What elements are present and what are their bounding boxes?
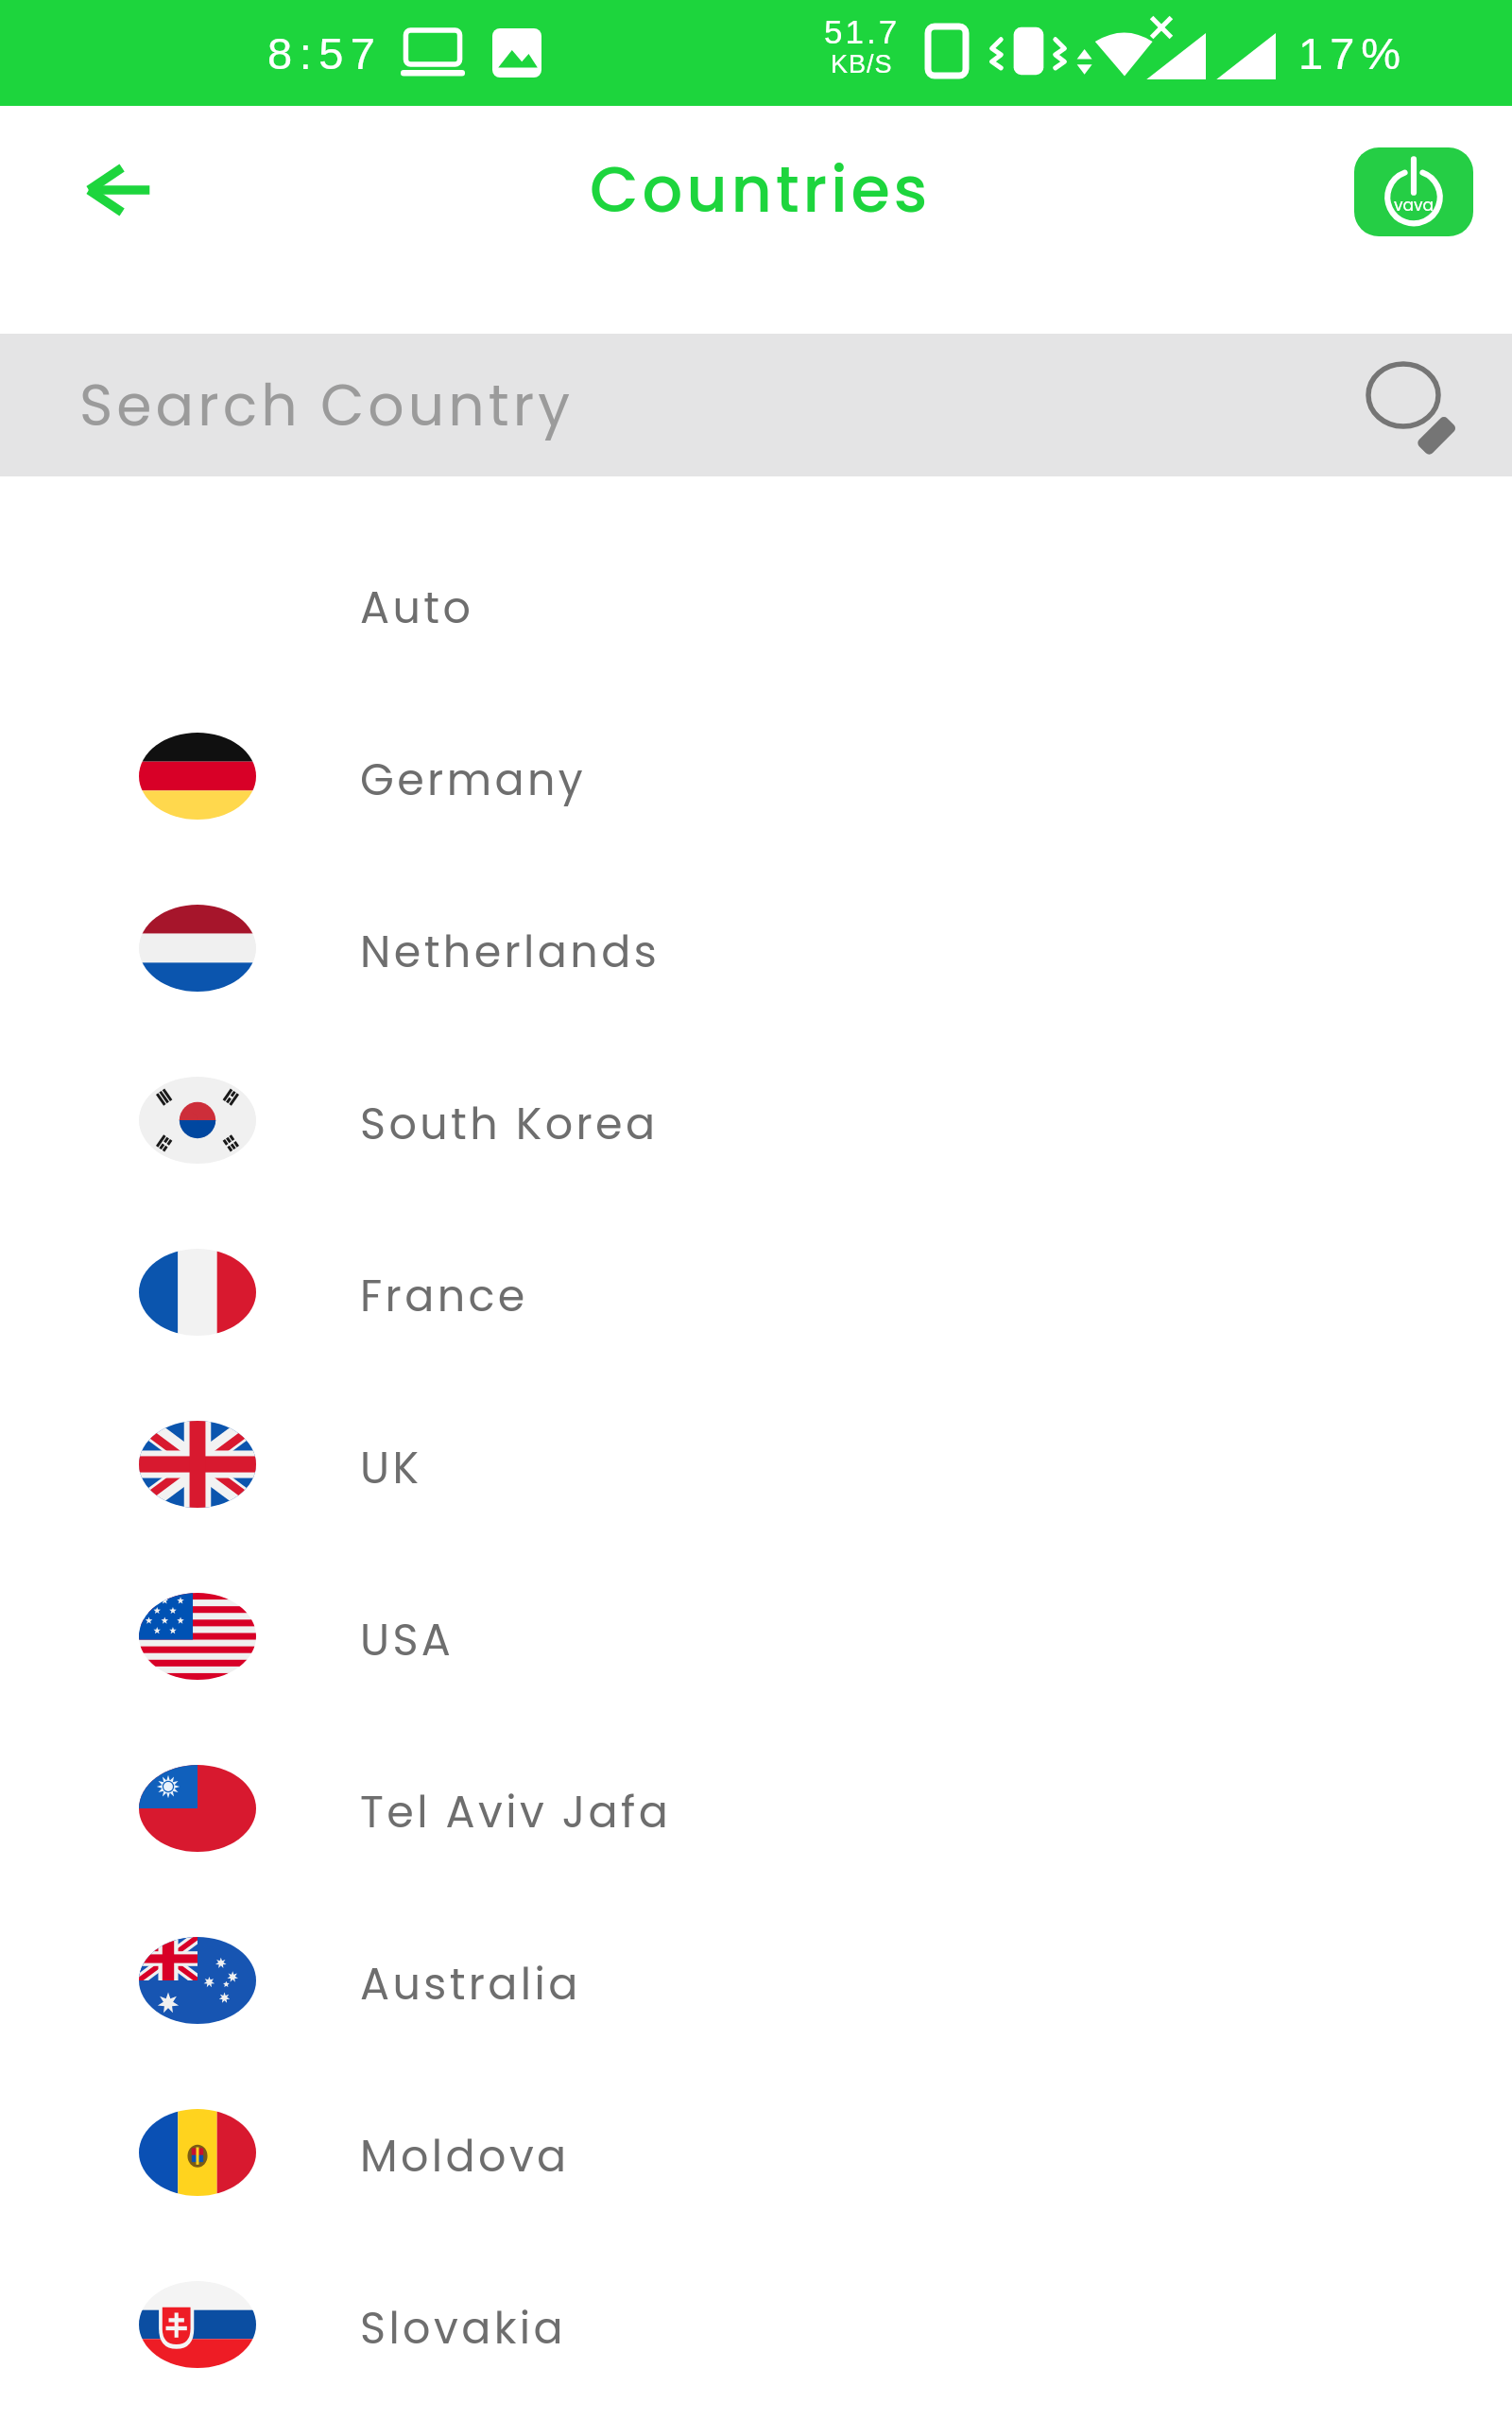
button[interactable]: Power: [1354, 147, 1473, 236]
staticText: Search Country: [79, 366, 575, 445]
staticText: France: [360, 1266, 528, 1326]
staticText: Tel Aviv Jafa: [360, 1782, 672, 1842]
staticText: 51.7: [824, 13, 901, 50]
staticText: UK: [360, 1438, 422, 1498]
button[interactable]: Slovakia: [0, 2238, 1512, 2411]
staticText: 17%: [1298, 28, 1408, 78]
button[interactable]: Back: [52, 124, 184, 256]
staticText: vava: [1394, 194, 1435, 216]
staticText: Auto: [360, 578, 474, 638]
button[interactable]: Australia: [0, 1894, 1512, 2066]
button[interactable]: Netherlands: [0, 862, 1512, 1034]
staticText: Netherlands: [360, 922, 661, 982]
button[interactable]: USA: [0, 1550, 1512, 1722]
button[interactable]: Moldova: [0, 2066, 1512, 2238]
button[interactable]: Germany: [0, 690, 1512, 862]
staticText: Countries: [590, 146, 932, 234]
button[interactable]: UK: [0, 1378, 1512, 1550]
staticText: KB/S: [831, 50, 893, 78]
staticText: South Korea: [360, 1094, 659, 1154]
staticText: Slovakia: [360, 2298, 566, 2359]
button[interactable]: Search Country: [0, 334, 1512, 476]
button[interactable]: Search: [1347, 334, 1479, 476]
button[interactable]: Auto: [0, 518, 1512, 690]
staticText: 8:57: [267, 28, 383, 78]
staticText: USA: [360, 1610, 455, 1670]
button[interactable]: France: [0, 1206, 1512, 1378]
staticText: Moldova: [360, 2126, 570, 2187]
staticText: Australia: [360, 1954, 581, 2014]
button[interactable]: South Korea: [0, 1034, 1512, 1206]
staticText: Germany: [360, 750, 587, 810]
button[interactable]: Tel Aviv Jafa: [0, 1722, 1512, 1894]
